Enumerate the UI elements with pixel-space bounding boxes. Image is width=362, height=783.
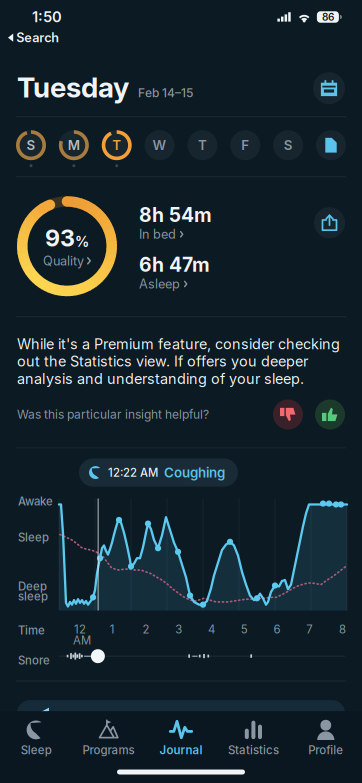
staticText: Awake xyxy=(18,494,53,508)
staticText: Feb 14–15 xyxy=(138,86,193,100)
staticText: Programs xyxy=(83,743,135,757)
staticText: 12:22 AM xyxy=(108,466,158,479)
button[interactable]: T xyxy=(187,130,217,167)
staticText: % xyxy=(75,233,89,250)
staticText: 7 xyxy=(306,622,312,636)
staticText: Sleep xyxy=(18,530,49,544)
button[interactable]: Programs xyxy=(72,711,145,761)
button[interactable]: S xyxy=(273,130,303,167)
staticText: Deep xyxy=(18,579,47,593)
staticText: Search xyxy=(16,30,59,45)
staticText: 3 xyxy=(175,622,182,636)
staticText: Quality xyxy=(43,253,84,268)
button[interactable]: 93 xyxy=(17,196,117,296)
staticText: While it's a Premium feature, consider c… xyxy=(17,335,340,387)
button[interactable]: Journal xyxy=(145,711,217,761)
staticText: 2 xyxy=(142,622,149,636)
staticText: sleep xyxy=(18,589,48,603)
button[interactable]: F xyxy=(230,130,260,167)
staticText: T xyxy=(112,137,121,153)
staticText: T xyxy=(198,137,207,153)
staticText: Profile xyxy=(308,743,343,757)
button[interactable]: Search xyxy=(0,27,59,48)
button[interactable]: Profile xyxy=(290,711,362,761)
staticText: Time xyxy=(18,623,45,637)
button[interactable]: Helpful xyxy=(315,399,345,429)
staticText: 93 xyxy=(45,224,75,252)
button[interactable]: T xyxy=(102,130,132,167)
staticText: 86 xyxy=(322,11,334,23)
staticText: 8h 54m xyxy=(139,203,212,227)
staticText: S xyxy=(284,137,293,153)
button[interactable]: Statistics xyxy=(217,711,290,761)
staticText: 8 xyxy=(339,622,346,636)
staticText: Sleep xyxy=(21,743,52,757)
staticText: Coughing xyxy=(164,464,225,481)
staticText: Snore xyxy=(18,653,50,667)
staticText: W xyxy=(153,137,167,153)
button[interactable]: M xyxy=(59,130,89,167)
staticText: 4 xyxy=(208,622,215,636)
staticText: Was this particular insight helpful? xyxy=(17,407,209,422)
button[interactable]: Calendar xyxy=(313,72,345,104)
staticText: Tuesday xyxy=(17,70,129,104)
staticText: M xyxy=(68,137,80,153)
staticText: 6 xyxy=(273,622,280,636)
staticText: AM xyxy=(73,633,91,647)
button[interactable]: Sleep xyxy=(0,711,72,761)
button[interactable]: 12:22 AM xyxy=(79,458,238,487)
staticText: 6h 47m xyxy=(139,253,210,276)
staticText: 1 xyxy=(110,622,115,636)
staticText: 1:50 xyxy=(32,8,62,26)
button[interactable]: S xyxy=(16,130,46,167)
button[interactable]: Share xyxy=(314,196,345,238)
button[interactable]: Not helpful xyxy=(273,399,303,429)
staticText: Journal xyxy=(159,743,202,757)
staticText: 12 xyxy=(74,622,86,636)
staticText: 5 xyxy=(241,622,248,636)
staticText: Asleep xyxy=(139,276,180,292)
staticText: S xyxy=(26,137,35,153)
button[interactable]: W xyxy=(145,130,175,167)
staticText: Statistics xyxy=(228,743,279,757)
staticText: F xyxy=(241,137,249,153)
staticText: In bed xyxy=(139,227,176,242)
button[interactable]: Notes xyxy=(316,130,346,167)
